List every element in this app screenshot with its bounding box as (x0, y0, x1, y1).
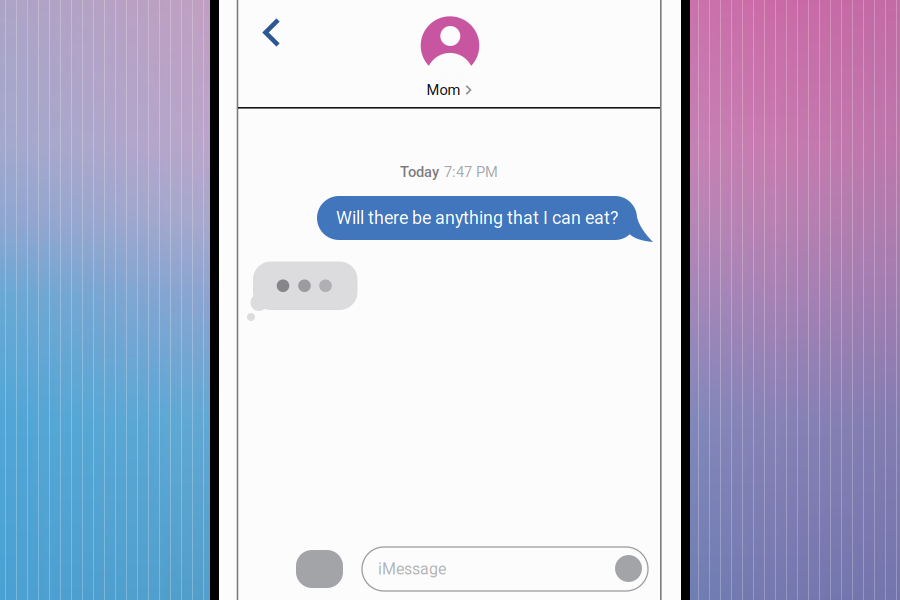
button[interactable]: Camera (0, 0, 900, 600)
button[interactable]: iMessage text field (0, 0, 900, 600)
staticText: iMessage (378, 560, 446, 578)
staticText: Mom (426, 81, 460, 99)
staticText: Today (400, 163, 439, 181)
staticText: Will there be anything that I can eat? (336, 207, 618, 228)
staticText: 7:47 PM (444, 163, 498, 181)
button[interactable]: Mom, contact details (0, 0, 900, 600)
button[interactable]: Back (0, 0, 900, 600)
